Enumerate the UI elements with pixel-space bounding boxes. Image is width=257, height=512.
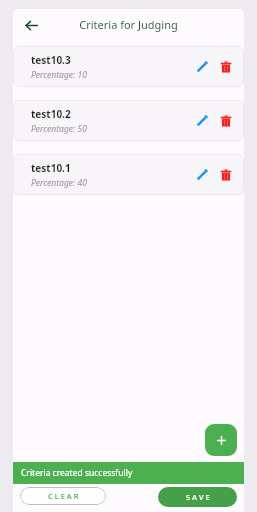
button[interactable]: Edit — [192, 165, 212, 185]
staticText: Percentage: 40 — [31, 177, 87, 189]
staticText: test10.2 — [31, 107, 71, 121]
button[interactable]: test10.3 — [13, 46, 244, 87]
staticText: Criteria created successfully — [21, 467, 133, 479]
button[interactable]: Edit — [192, 111, 212, 131]
button[interactable]: Add criteria — [205, 424, 237, 456]
button[interactable]: test10.1 — [13, 154, 244, 195]
button[interactable]: S A V E — [158, 487, 237, 507]
staticText: Percentage: 10 — [31, 69, 87, 81]
button[interactable]: Delete — [216, 111, 236, 131]
button[interactable]: C L E A R — [20, 487, 106, 505]
button[interactable]: test10.2 — [13, 100, 244, 141]
staticText: Percentage: 50 — [31, 123, 87, 135]
button[interactable]: Delete — [216, 165, 236, 185]
staticText: Criteria for Judging — [79, 17, 178, 32]
staticText: test10.3 — [31, 53, 71, 67]
button[interactable]: Back — [19, 13, 43, 37]
staticText: test10.1 — [31, 161, 71, 175]
button[interactable]: Delete — [216, 57, 236, 77]
button[interactable]: Edit — [192, 57, 212, 77]
staticText: C L E A R — [48, 491, 79, 501]
staticText: S A V E — [186, 492, 210, 502]
